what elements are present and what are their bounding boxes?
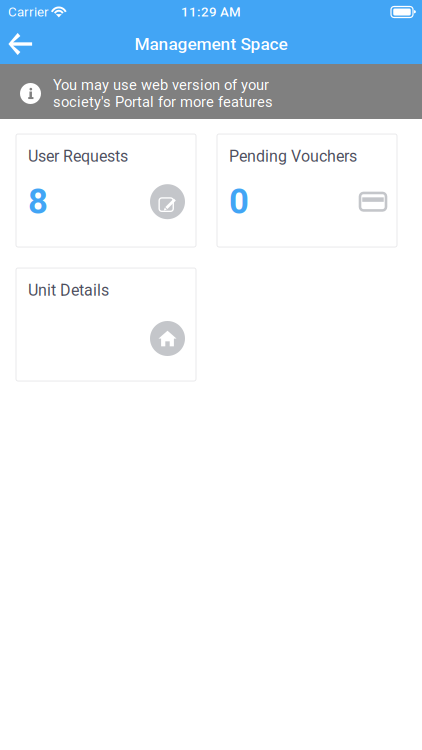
staticText: Unit Details [28, 281, 109, 300]
staticText: society's Portal for more features [53, 93, 273, 111]
staticText: 11:29 AM [181, 4, 241, 20]
staticText: User Requests [28, 147, 128, 166]
button[interactable]: Unit Details [16, 268, 196, 381]
button[interactable]: Pending Vouchers [217, 134, 397, 247]
staticText: Pending Vouchers [229, 147, 357, 166]
staticText: 0 [229, 181, 249, 222]
staticText: Carrier [8, 4, 49, 20]
staticText: Management Space [134, 34, 287, 54]
staticText: You may use web version of your [53, 76, 269, 93]
button[interactable]: Back [0, 24, 40, 64]
staticText: 8 [28, 181, 48, 222]
button[interactable]: User Requests [16, 134, 196, 247]
